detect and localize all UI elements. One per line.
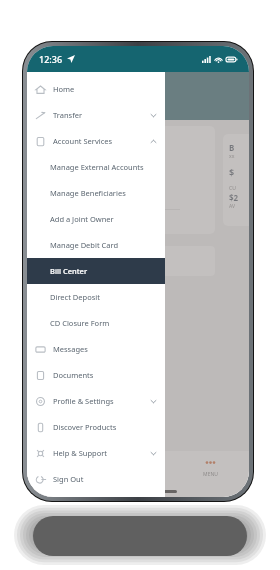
button[interactable]: Manage Beneficiaries [27,180,165,206]
staticText: B [229,142,235,153]
button[interactable]: Add a Joint Owner [27,206,165,232]
staticText: Add a Joint Owner [50,214,114,224]
staticText: Bill Center [50,266,88,276]
staticText: Direct Deposit [50,292,100,302]
staticText: Help & Support [53,448,108,458]
staticText: · [59,78,62,93]
button[interactable]: Sign Out [27,466,165,492]
staticText: nk [35,79,56,105]
staticText: ts [43,256,51,267]
other: Menu [205,458,216,469]
staticText: Manage Beneficiaries [50,188,126,198]
button[interactable]: Profile & Settings [27,388,165,414]
button[interactable]: Menu [175,451,245,485]
button[interactable]: Direct Deposit [27,284,165,310]
staticText: Home [53,84,75,94]
staticText: AV [229,203,235,210]
button[interactable]: Transfer [33,126,215,234]
staticText: Account Services [53,136,113,146]
staticText: xx [229,153,235,160]
button[interactable]: Help & Support [27,440,165,466]
button[interactable]: Home [27,76,165,102]
staticText: CD Closure Form [50,318,110,328]
staticText: Profile & Settings [53,396,114,406]
button[interactable]: Account Services [27,128,165,154]
staticText: 12:36 [39,53,63,65]
button[interactable]: Bill Center [27,258,165,284]
button[interactable]: Transfer [27,102,165,128]
button[interactable]: B [223,134,249,226]
staticText: mber [35,103,56,114]
staticText: Sign Out [53,474,84,484]
staticText: Transfer [53,110,83,120]
staticText: Documents [53,370,94,380]
button[interactable]: Documents [27,362,165,388]
staticText: Transfer [43,213,77,224]
button[interactable]: Manage External Accounts [27,154,165,180]
button[interactable]: CD Closure Form [27,310,165,336]
button[interactable]: Messages [27,336,165,362]
staticText: Manage Debit Card [50,240,119,250]
button[interactable]: Manage Debit Card [27,232,165,258]
button[interactable]: ts [33,246,215,276]
staticText: $2 [229,192,239,203]
button[interactable]: Transfer [105,451,175,485]
staticText: Manage External Accounts [50,162,144,172]
staticText: MENU [203,471,218,478]
staticText: CU [229,185,236,192]
staticText: Discover Products [53,422,117,432]
staticText: $ [229,166,235,178]
staticText: Messages [53,344,88,354]
button[interactable]: Discover Products [27,414,165,440]
